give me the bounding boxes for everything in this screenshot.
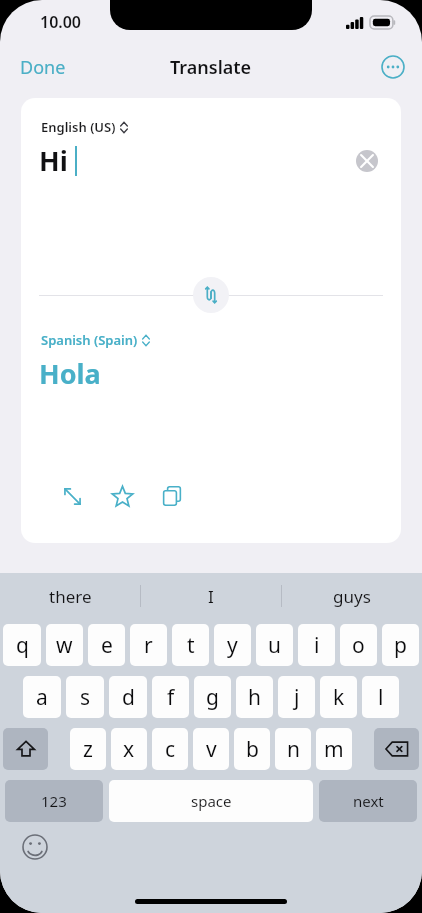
button[interactable]: h	[236, 676, 273, 718]
staticText: Hi	[39, 142, 68, 179]
staticText: Done	[20, 55, 66, 80]
button[interactable]: x	[111, 728, 147, 770]
staticText: x	[123, 735, 135, 764]
staticText: y	[227, 631, 238, 660]
button[interactable]: More options	[378, 52, 408, 82]
staticText: v	[206, 735, 217, 764]
button[interactable]: l	[362, 676, 399, 718]
staticText: u	[268, 631, 281, 660]
staticText: m	[324, 735, 344, 764]
button[interactable]: a	[23, 676, 61, 718]
button[interactable]: Expand translation	[55, 479, 89, 513]
button[interactable]: i	[298, 624, 335, 666]
button[interactable]: c	[152, 728, 188, 770]
staticText: c	[165, 735, 176, 764]
staticText: 123	[41, 791, 67, 811]
staticText: n	[287, 735, 300, 764]
staticText: a	[36, 683, 48, 712]
button[interactable]: m	[316, 728, 352, 770]
button[interactable]: u	[256, 624, 293, 666]
button[interactable]: 123	[5, 780, 103, 822]
staticText: k	[333, 683, 345, 712]
button[interactable]: Add to favorites	[105, 479, 139, 513]
staticText: s	[80, 683, 91, 712]
button[interactable]: Spanish (Spain)	[39, 329, 152, 351]
staticText: d	[122, 683, 135, 712]
button[interactable]: Copy translation	[155, 479, 189, 513]
staticText: p	[394, 631, 407, 660]
button[interactable]: z	[70, 728, 106, 770]
button[interactable]: y	[214, 624, 251, 666]
staticText: w	[56, 631, 73, 660]
button[interactable]: v	[193, 728, 229, 770]
staticText: q	[16, 631, 29, 660]
button[interactable]: Shift	[3, 728, 48, 770]
staticText: h	[248, 683, 261, 712]
button[interactable]: k	[320, 676, 357, 718]
staticText: l	[378, 683, 384, 712]
staticText: next	[353, 791, 384, 811]
staticText: Translate	[170, 55, 252, 80]
staticText: j	[294, 683, 300, 712]
button[interactable]: English (US)	[39, 116, 130, 138]
staticText: e	[101, 631, 113, 660]
button[interactable]: q	[3, 624, 41, 666]
button[interactable]: j	[278, 676, 315, 718]
button[interactable]: t	[172, 624, 209, 666]
staticText: z	[83, 735, 93, 764]
button[interactable]: s	[66, 676, 104, 718]
staticText: i	[314, 631, 320, 660]
button[interactable]: Emoji keyboard	[18, 830, 52, 864]
button[interactable]: there	[0, 573, 140, 619]
staticText: Hola	[39, 355, 101, 392]
button[interactable]: d	[109, 676, 147, 718]
button[interactable]: o	[340, 624, 377, 666]
button[interactable]: g	[194, 676, 231, 718]
button[interactable]: n	[275, 728, 311, 770]
button[interactable]: Clear text	[353, 147, 381, 175]
button[interactable]: f	[152, 676, 189, 718]
button[interactable]: space	[109, 780, 313, 822]
button[interactable]: e	[88, 624, 125, 666]
button[interactable]: b	[234, 728, 270, 770]
staticText: f	[167, 683, 175, 712]
staticText: Spanish (Spain)	[41, 331, 138, 349]
button[interactable]: w	[46, 624, 83, 666]
staticText: I	[208, 585, 214, 608]
staticText: there	[49, 585, 92, 608]
button[interactable]: p	[382, 624, 419, 666]
button[interactable]: Swap languages	[193, 277, 229, 313]
button[interactable]: r	[130, 624, 167, 666]
staticText: space	[191, 791, 232, 811]
button[interactable]: guys	[282, 573, 422, 619]
staticText: t	[187, 631, 195, 660]
button[interactable]: next	[319, 780, 417, 822]
staticText: g	[206, 683, 219, 712]
button[interactable]: Done	[8, 49, 78, 86]
staticText: b	[246, 735, 259, 764]
staticText: guys	[333, 585, 371, 608]
staticText: r	[144, 631, 153, 660]
button[interactable]: Backspace	[374, 728, 419, 770]
staticText: 10.00	[40, 11, 82, 33]
staticText: o	[352, 631, 365, 660]
button[interactable]: I	[141, 573, 281, 619]
staticText: English (US)	[41, 118, 116, 136]
